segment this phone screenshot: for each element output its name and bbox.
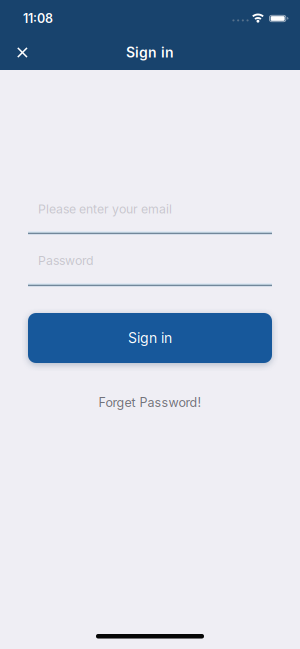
- button[interactable]: Password: [28, 250, 272, 270]
- button[interactable]: [0, 35, 38, 70]
- staticText: Sign in: [126, 44, 174, 61]
- button[interactable]: Forget Password!: [98, 395, 201, 410]
- button[interactable]: Sign in: [28, 313, 272, 363]
- button[interactable]: Please enter your email: [28, 199, 272, 219]
- staticText: Please enter your email: [38, 202, 172, 216]
- staticText: 11:08: [23, 11, 53, 26]
- staticText: Forget Password!: [98, 395, 201, 410]
- staticText: Password: [38, 253, 94, 268]
- staticText: Sign in: [128, 329, 172, 346]
